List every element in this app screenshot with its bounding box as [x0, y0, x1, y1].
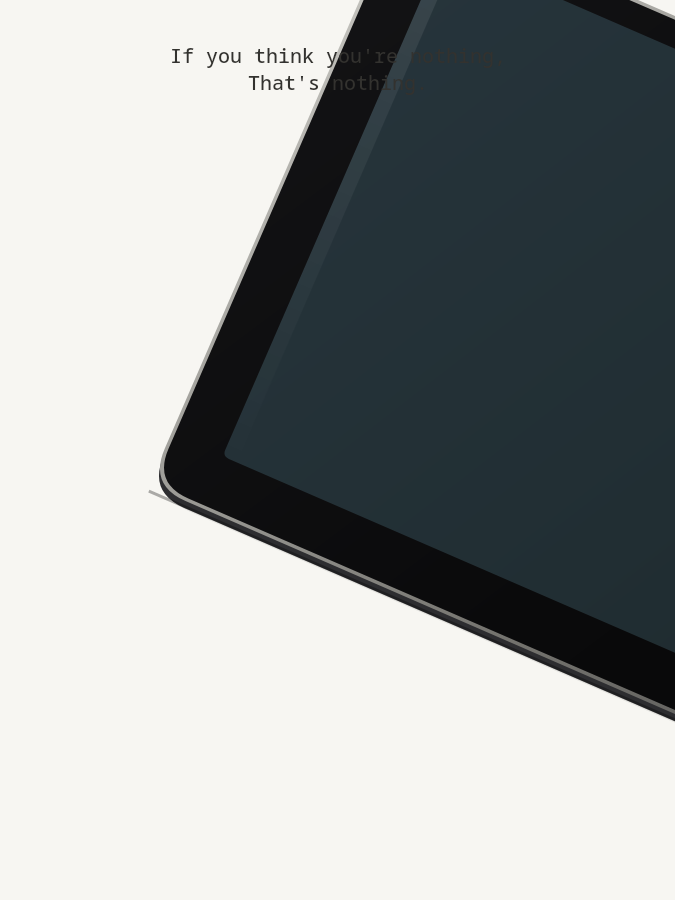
other: Photo of a tablet showing the number 4 [0, 0, 675, 900]
button[interactable]: If you think you're nothing, [0, 42, 675, 96]
staticText: If you think you're nothing, [170, 42, 506, 69]
staticText: That's nothing. [248, 69, 428, 96]
